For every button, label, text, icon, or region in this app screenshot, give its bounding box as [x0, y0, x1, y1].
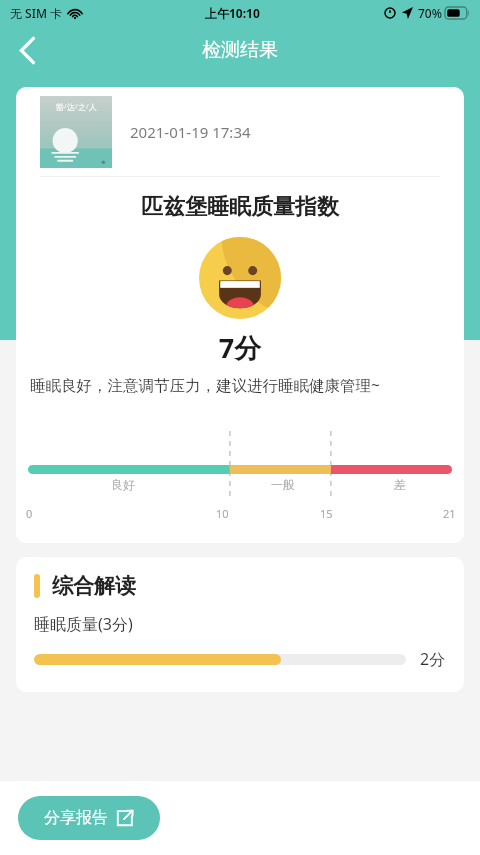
staticText: 15 [320, 506, 333, 521]
staticText: / [75, 102, 78, 112]
staticText: 一般 [271, 477, 295, 492]
staticText: 2021-01-19 17:34 [130, 122, 251, 142]
staticText: 分享报告 [44, 808, 108, 828]
staticText: 0 [26, 506, 33, 521]
staticText: 无 SIM 卡 [10, 5, 63, 21]
staticText: / [86, 102, 89, 112]
staticText: 检测结果 [202, 38, 278, 62]
staticText: 睡眠质量(3分) [34, 613, 133, 635]
staticText: 达 [67, 102, 75, 112]
staticText: 7分 [16, 329, 464, 366]
staticText: 2分 [420, 648, 446, 670]
staticText: 匹兹堡睡眠质量指数 [16, 193, 464, 221]
staticText: 综合解读 [52, 573, 136, 599]
staticText: 10 [216, 506, 229, 521]
staticText: 70% [418, 5, 442, 21]
button[interactable]: 分享报告 [18, 796, 160, 840]
staticText: 良好 [111, 477, 135, 492]
staticText: 上午10:10 [205, 5, 260, 21]
staticText: 之 [78, 102, 86, 112]
staticText: 豁 [56, 102, 64, 112]
staticText: 睡眠良好，注意调节压力，建议进行睡眠健康管理~ [30, 374, 450, 395]
staticText: / [64, 102, 67, 112]
staticText: 差 [394, 477, 406, 492]
button[interactable]: Back [4, 27, 50, 73]
staticText: 人 [89, 102, 97, 112]
staticText: 21 [443, 506, 456, 521]
